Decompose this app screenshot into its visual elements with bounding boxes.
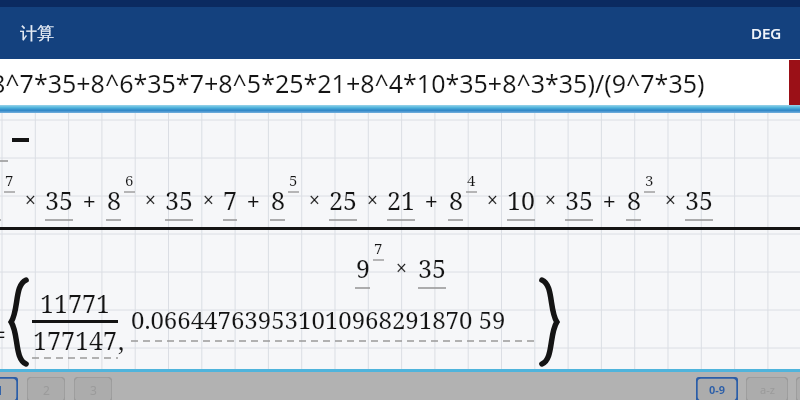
staticText: 35 [685, 183, 713, 217]
staticText: 8 [107, 183, 121, 217]
staticText: 3 [90, 382, 97, 398]
button[interactable]: DEG [747, 19, 786, 47]
staticText: × [25, 187, 36, 213]
staticText: + [425, 185, 438, 215]
staticText: 7 [5, 170, 14, 190]
staticText: 35 [418, 251, 446, 285]
staticText: 0-9 [709, 382, 726, 397]
staticText: a-z [760, 382, 775, 397]
staticText: × [203, 187, 214, 213]
staticText: × [145, 187, 156, 213]
staticText: × [665, 187, 676, 213]
staticText: 10 [507, 183, 535, 217]
staticText: 11771 [40, 286, 110, 320]
staticText: 5 [289, 170, 298, 190]
button[interactable]: A [796, 377, 800, 400]
staticText: 8 [627, 183, 641, 217]
staticText: 35 [165, 183, 193, 217]
staticText: + [603, 185, 616, 215]
staticText: 35 [45, 183, 73, 217]
button[interactable]: 3 [74, 377, 112, 400]
staticText: 1 [0, 382, 3, 398]
button[interactable]: 2 [27, 377, 65, 400]
staticText: 9 [356, 251, 370, 285]
staticText: 8^7*35+8^6*35*7+8^5*25*21+8^4*10*35+8^3*… [0, 66, 705, 100]
staticText: , [118, 323, 125, 357]
staticText: 4 [467, 170, 476, 190]
staticText: 3 [645, 170, 654, 190]
staticText: + [83, 185, 96, 215]
button[interactable]: 计算 [18, 21, 56, 46]
button[interactable]: 0-9 [696, 377, 738, 400]
staticText: × [545, 187, 556, 213]
staticText: 35 [565, 183, 593, 217]
staticText: 2 [43, 382, 50, 398]
button[interactable]: 1 [0, 377, 18, 400]
staticText: × [487, 187, 498, 213]
staticText: × [367, 187, 378, 213]
button[interactable]: a-z [746, 377, 788, 400]
staticText: 177147 [33, 323, 117, 357]
staticText: 8 [449, 183, 463, 217]
staticText: 7 [223, 183, 237, 217]
staticText: × [396, 255, 407, 281]
staticText: 21 [387, 183, 415, 217]
staticText: 6 [125, 170, 134, 190]
staticText: 8 [271, 183, 285, 217]
staticText: = [0, 317, 6, 351]
staticText: 0.066447639531010968291870 59 [131, 303, 506, 336]
button[interactable]: 8^7*35+8^6*35*7+8^5*25*21+8^4*10*35+8^3*… [0, 59, 800, 106]
staticText: 25 [329, 183, 357, 217]
staticText: + [247, 185, 260, 215]
staticText: 8 [0, 183, 1, 217]
staticText: 7 [374, 238, 383, 258]
staticText: × [309, 187, 320, 213]
